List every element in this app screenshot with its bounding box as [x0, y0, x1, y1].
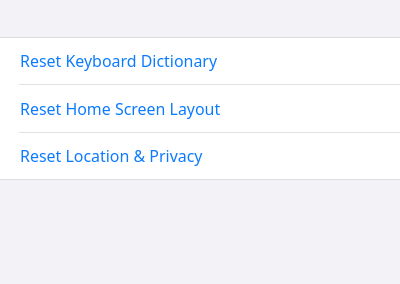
button[interactable]: Reset Home Screen Layout: [0, 85, 400, 132]
staticText: Reset Home Screen Layout: [20, 98, 221, 120]
staticText: Reset Keyboard Dictionary: [20, 50, 218, 72]
staticText: Reset Location & Privacy: [20, 145, 203, 167]
button[interactable]: Reset Location & Privacy: [0, 132, 400, 179]
button[interactable]: Reset Keyboard Dictionary: [0, 37, 400, 84]
